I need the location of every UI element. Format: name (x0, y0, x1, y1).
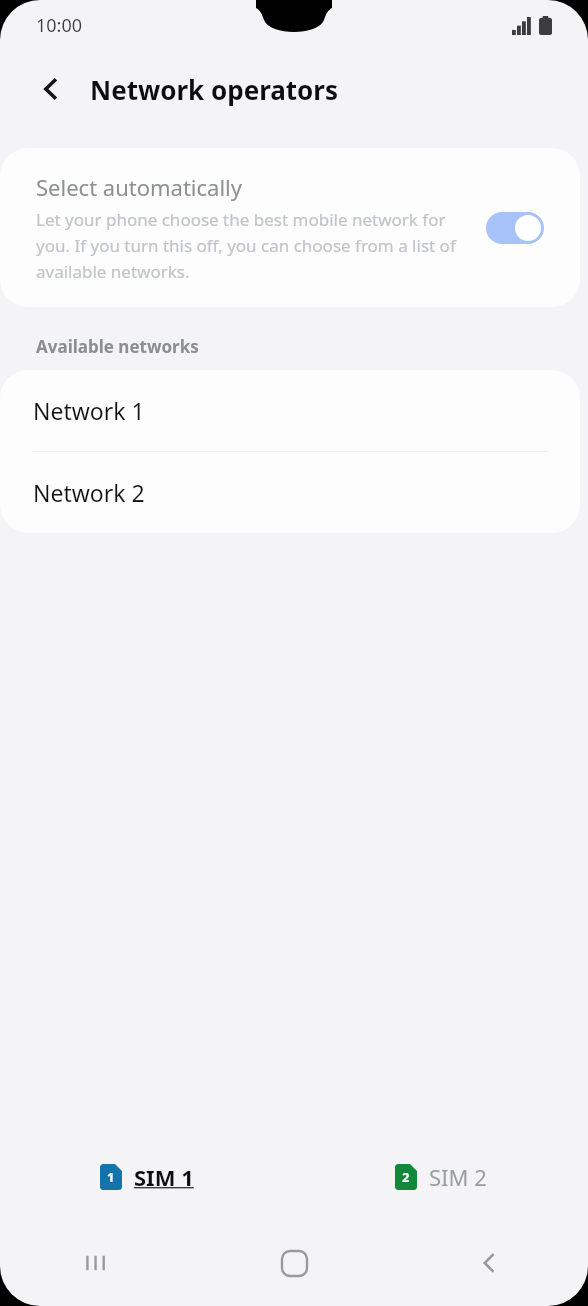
button[interactable]: Select automatically toggle (486, 212, 544, 244)
staticText: Network 1 (33, 395, 145, 426)
staticText: Select automatically (36, 172, 242, 202)
button[interactable]: Network 1 (0, 370, 580, 451)
button[interactable]: Recent apps (0, 1236, 196, 1290)
button[interactable]: Home (196, 1236, 392, 1290)
button[interactable]: Select automatically (0, 148, 580, 307)
staticText: SIM 2 (429, 1162, 487, 1192)
staticText: SIM 1 (134, 1162, 194, 1192)
staticText: Network operators (90, 72, 339, 107)
staticText: 2 (402, 1168, 410, 1186)
button[interactable]: Back (392, 1236, 588, 1290)
staticText: Available networks (36, 335, 199, 358)
staticText: 10:00 (36, 13, 83, 38)
staticText: 1 (107, 1168, 115, 1186)
button[interactable]: Back (26, 63, 78, 115)
button[interactable]: Network 2 (0, 452, 580, 533)
button[interactable]: 1 (90, 1156, 204, 1198)
button[interactable]: 2 (385, 1156, 497, 1198)
staticText: Let your phone choose the best mobile ne… (36, 208, 470, 283)
staticText: Network 2 (33, 477, 145, 508)
